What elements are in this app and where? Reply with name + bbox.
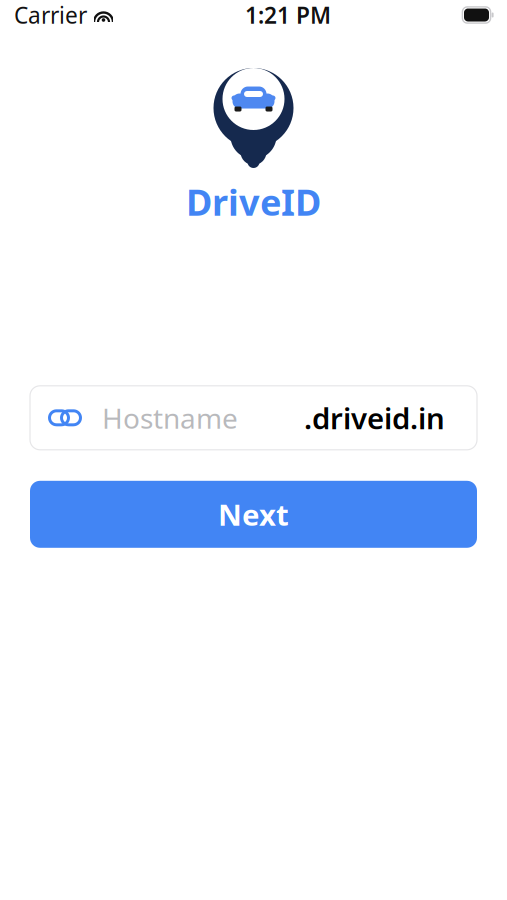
staticText: 1:21 PM xyxy=(245,0,331,30)
staticText: Next xyxy=(218,495,289,534)
staticText: .driveid.in xyxy=(304,398,445,437)
staticText: Carrier xyxy=(14,0,87,30)
staticText: Hostname xyxy=(102,399,238,436)
button[interactable]: Next xyxy=(30,481,477,548)
button[interactable]: Hostname xyxy=(30,386,477,450)
staticText: DriveID xyxy=(186,178,321,226)
